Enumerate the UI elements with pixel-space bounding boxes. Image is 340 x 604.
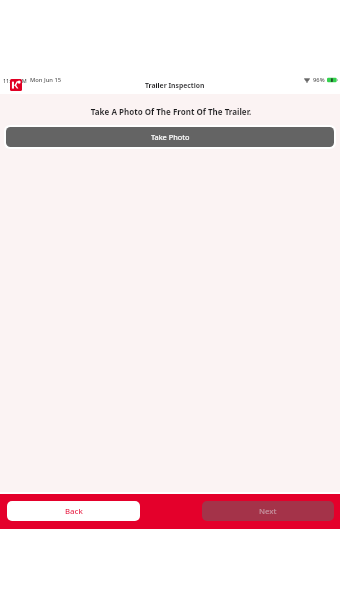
staticText: Trailer Inspection	[145, 81, 205, 90]
staticText: Next	[259, 506, 277, 517]
staticText: Back	[65, 506, 83, 517]
staticText: Take A Photo Of The Front Of The Trailer…	[1, 106, 340, 117]
button[interactable]: Take Photo	[6, 127, 334, 147]
staticText: Mon Jun 15	[30, 76, 62, 84]
staticText: 11:39 AM	[3, 77, 27, 84]
other: Battery 96 percent	[327, 77, 338, 83]
other: Wi-Fi signal	[304, 78, 310, 83]
staticText: 96%	[313, 76, 325, 84]
staticText: Take Photo	[151, 132, 190, 142]
button[interactable]: Next	[202, 501, 334, 521]
button[interactable]: App icon	[10, 79, 22, 91]
button[interactable]: Back	[7, 501, 140, 521]
